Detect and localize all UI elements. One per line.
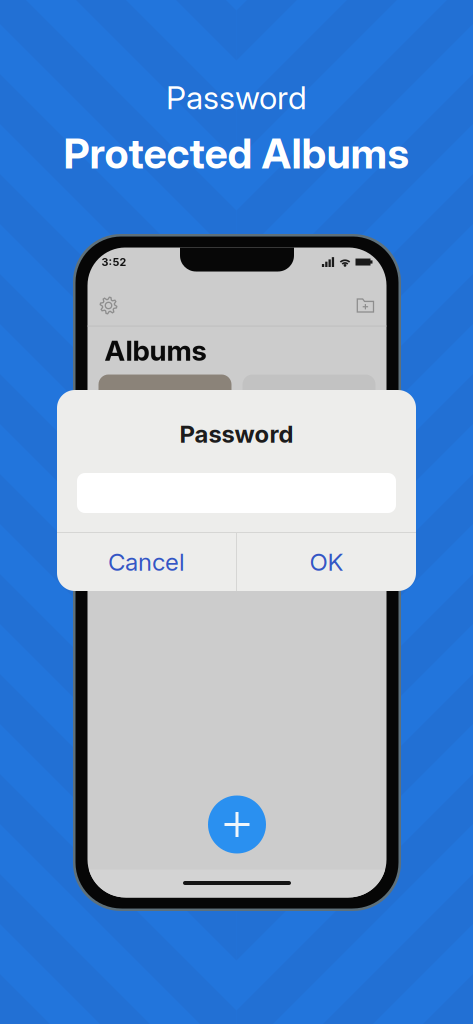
staticText: Password xyxy=(179,419,293,448)
button[interactable]: OK xyxy=(237,533,416,591)
button[interactable]: Settings xyxy=(87,292,129,318)
staticText: Albums xyxy=(104,334,206,367)
staticText: OK xyxy=(309,547,343,576)
staticText: 3:52 xyxy=(101,255,126,268)
button[interactable]: Cancel xyxy=(57,533,236,591)
button[interactable]: Add Album xyxy=(208,795,266,853)
staticText: Password xyxy=(166,78,307,117)
button[interactable]: New Album xyxy=(344,292,386,318)
staticText: Cancel xyxy=(108,547,185,576)
staticText: Protected Albums xyxy=(63,128,409,178)
